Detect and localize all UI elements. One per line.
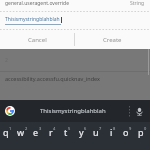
staticText: 0	[144, 126, 147, 131]
button[interactable]: p	[135, 126, 150, 146]
button[interactable]: Google Search	[4, 105, 16, 117]
staticText: Cancel	[28, 36, 47, 44]
staticText: q	[3, 126, 9, 138]
staticText: general.useragent.override	[5, 0, 130, 7]
staticText: r	[49, 126, 53, 138]
staticText: y	[79, 126, 84, 138]
staticText: 2	[25, 126, 28, 131]
staticText: i	[110, 126, 113, 138]
button[interactable]: Cancel	[0, 30, 74, 49]
staticText: p	[138, 126, 144, 138]
staticText: u	[93, 126, 99, 138]
staticText: 7	[99, 126, 102, 131]
staticText: o	[123, 126, 129, 138]
staticText: e	[33, 126, 39, 138]
button[interactable]: Voice input	[133, 105, 145, 117]
button[interactable]: y	[75, 126, 90, 146]
staticText: accessibility.accessfu.quicknav_index	[5, 75, 100, 82]
button[interactable]: e	[30, 126, 45, 146]
staticText: w	[17, 126, 25, 138]
button[interactable]: accessibility.accessfu.quicknav_index	[0, 72, 150, 100]
staticText: 5	[68, 126, 71, 131]
button[interactable]: o	[120, 126, 135, 146]
staticText: 4	[53, 126, 56, 131]
button[interactable]: u	[90, 126, 105, 146]
button[interactable]: t	[60, 126, 75, 146]
button[interactable]: w	[15, 126, 30, 146]
staticText: String	[130, 0, 145, 7]
button[interactable]: q	[0, 126, 15, 146]
button[interactable]: Thisismystringblahblah	[16, 100, 129, 122]
button[interactable]: r	[45, 126, 60, 146]
staticText: Thisismystringblahblah	[5, 16, 60, 23]
button[interactable]: Thisismystringblahblah	[5, 16, 62, 25]
staticText: 8	[113, 126, 116, 131]
staticText: Create	[103, 36, 122, 44]
staticText: 3	[39, 126, 42, 131]
staticText: 6	[84, 126, 87, 131]
button[interactable]: i	[105, 126, 120, 146]
staticText: Thisismystringblahblah	[40, 107, 106, 115]
button[interactable]: Create	[75, 30, 150, 49]
staticText: t	[64, 126, 68, 138]
staticText: 9	[129, 126, 132, 131]
staticText: 1	[9, 126, 12, 131]
